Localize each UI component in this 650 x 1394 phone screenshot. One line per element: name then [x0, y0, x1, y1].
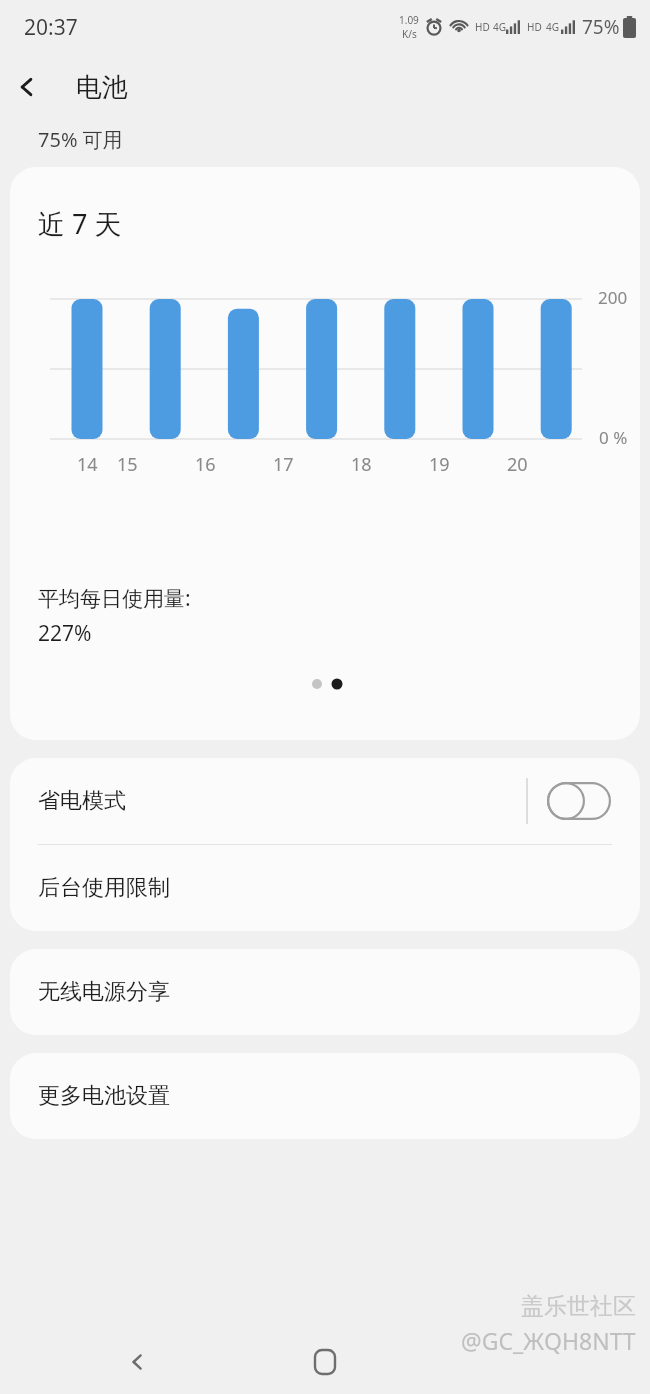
staticText: 18: [351, 452, 372, 477]
staticText: 75%: [582, 14, 620, 40]
staticText: 无线电源分享: [38, 978, 170, 1006]
button[interactable]: Home: [297, 1334, 353, 1390]
staticText: 20:37: [24, 13, 78, 42]
button[interactable]: 后台使用限制: [10, 845, 640, 931]
staticText: 16: [195, 452, 216, 477]
staticText: 0 %: [599, 426, 628, 449]
staticText: 14: [77, 452, 98, 477]
staticText: 盖乐世社区: [521, 1292, 636, 1321]
staticText: 200: [598, 286, 628, 309]
button[interactable]: 省电模式: [10, 758, 640, 844]
staticText: HD: [527, 20, 542, 34]
staticText: K/s: [402, 27, 417, 41]
staticText: 后台使用限制: [38, 874, 170, 902]
staticText: 电池: [76, 71, 128, 104]
staticText: 20: [507, 452, 528, 477]
button[interactable]: Power saving toggle: [546, 781, 612, 821]
staticText: 省电模式: [38, 787, 526, 815]
button[interactable]: Back: [0, 60, 54, 114]
staticText: 227%: [38, 619, 92, 648]
staticText: 4G: [546, 20, 559, 34]
staticText: 4G: [493, 20, 506, 34]
staticText: 平均每日使用量:: [38, 584, 191, 613]
staticText: 近 7 天: [38, 205, 122, 242]
staticText: 1.09: [399, 13, 419, 27]
staticText: 更多电池设置: [38, 1082, 170, 1110]
staticText: 75% 可用: [38, 126, 123, 153]
button[interactable]: 无线电源分享: [10, 949, 640, 1035]
button[interactable]: Back: [110, 1334, 166, 1390]
staticText: 17: [273, 452, 294, 477]
staticText: HD: [475, 20, 490, 34]
button[interactable]: 近 7 天: [10, 167, 640, 740]
staticText: 15: [117, 452, 138, 477]
button[interactable]: 更多电池设置: [10, 1053, 640, 1139]
staticText: @GC_ЖQH8NTT: [461, 1325, 636, 1356]
staticText: 19: [429, 452, 450, 477]
